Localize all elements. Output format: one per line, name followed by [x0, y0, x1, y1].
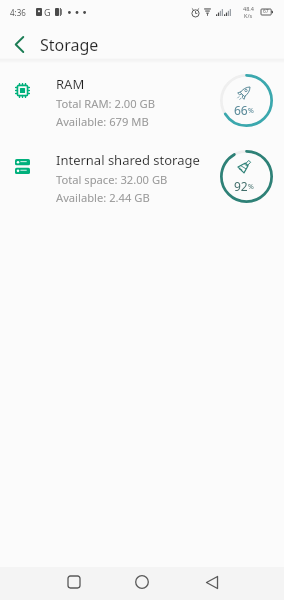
- staticText: %: [248, 182, 254, 192]
- staticText: K/s: [244, 12, 253, 19]
- staticText: 66: [234, 102, 248, 118]
- staticText: 48.4: [243, 5, 254, 12]
- staticText: %: [248, 106, 254, 116]
- staticText: G: [44, 6, 51, 18]
- staticText: Storage: [40, 34, 99, 56]
- staticText: Total space: 32.00 GB: [56, 172, 168, 187]
- button[interactable]: Internal shared storage: [0, 146, 284, 218]
- staticText: 67: [263, 8, 269, 14]
- staticText: RAM: [56, 75, 85, 93]
- staticText: Total RAM: 2.00 GB: [56, 96, 155, 111]
- button[interactable]: Recent apps: [57, 568, 90, 596]
- button[interactable]: Back: [195, 568, 228, 596]
- button[interactable]: Home: [125, 568, 158, 596]
- button[interactable]: RAM: [0, 70, 284, 142]
- staticText: Available: 679 MB: [56, 114, 149, 129]
- staticText: 4:36: [10, 7, 26, 18]
- staticText: Internal shared storage: [56, 151, 200, 169]
- staticText: 92: [234, 178, 248, 194]
- button[interactable]: Back: [5, 24, 33, 62]
- staticText: Available: 2.44 GB: [56, 190, 150, 205]
